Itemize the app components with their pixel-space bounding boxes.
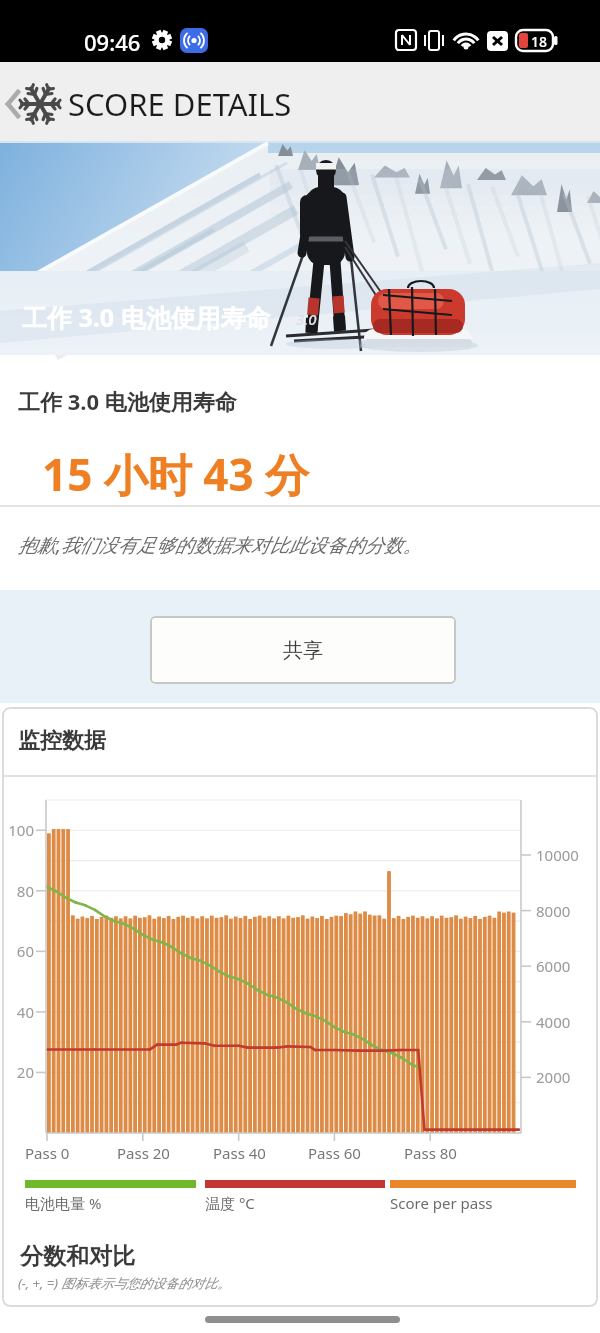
staticText: 09:46 (84, 27, 141, 57)
staticText: 2000 (536, 1067, 571, 1087)
button[interactable] (0, 62, 600, 143)
staticText: 工作 3.0 电池使用寿命 (18, 386, 237, 416)
staticText: 分数和对比 (20, 1242, 135, 1271)
staticText: (-, +, =) 图标表示与您的设备的对比。 (18, 1274, 231, 1292)
staticText: 监控数据 (18, 727, 106, 755)
staticText: Pass 60 (308, 1143, 361, 1163)
staticText: 电池电量 % (25, 1193, 102, 1213)
staticText: 3.0 (296, 309, 317, 329)
staticText: 20 (16, 1062, 34, 1082)
staticText: Pass 20 (117, 1143, 170, 1163)
staticText: 80 (16, 881, 34, 901)
staticText: Score per pass (390, 1193, 493, 1213)
staticText: SCORE DETAILS (68, 83, 292, 125)
staticText: 15 小时 43 分 (42, 444, 309, 504)
staticText: 共享 (283, 638, 323, 663)
staticText: 10000 (536, 845, 579, 865)
staticText: 60 (16, 941, 34, 961)
staticText: 4000 (536, 1012, 571, 1032)
staticText: Pass 80 (404, 1143, 457, 1163)
staticText: Pass 40 (213, 1143, 266, 1163)
staticText: 8000 (536, 901, 571, 921)
staticText: 100 (8, 820, 34, 840)
staticText: 温度 °C (205, 1193, 255, 1213)
staticText: 工作 3.0 电池使用寿命 (22, 300, 271, 334)
button[interactable]: 共享 (150, 616, 456, 684)
staticText: 18 (531, 32, 548, 51)
staticText: 6000 (536, 956, 571, 976)
staticText: 抱歉,我们没有足够的数据来对比此设备的分数。 (18, 532, 422, 558)
staticText: 40 (16, 1002, 34, 1022)
staticText: Pass 0 (25, 1143, 70, 1163)
